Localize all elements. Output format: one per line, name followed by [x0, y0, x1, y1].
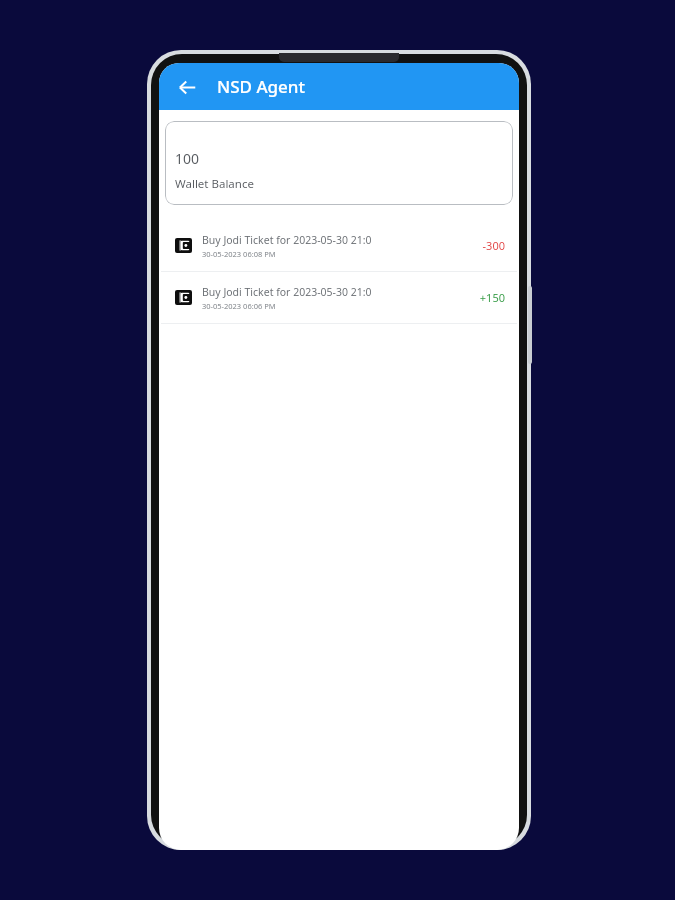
button[interactable]: Buy Jodi Ticket for 2023-05-30 21:0 — [159, 220, 519, 271]
staticText: 100 — [175, 149, 200, 168]
staticText: NSD Agent — [217, 75, 305, 98]
button[interactable]: Buy Jodi Ticket for 2023-05-30 21:0 — [159, 272, 519, 323]
staticText: 30-05-2023 06:08 PM — [202, 249, 276, 259]
staticText: Wallet Balance — [175, 176, 254, 192]
staticText: Buy Jodi Ticket for 2023-05-30 21:0 — [202, 233, 372, 247]
button[interactable]: 100 — [165, 121, 513, 205]
button[interactable]: Back — [167, 67, 207, 107]
staticText: +150 — [479, 290, 505, 305]
staticText: Buy Jodi Ticket for 2023-05-30 21:0 — [202, 285, 372, 299]
staticText: 30-05-2023 06:06 PM — [202, 301, 276, 311]
staticText: -300 — [482, 238, 505, 253]
